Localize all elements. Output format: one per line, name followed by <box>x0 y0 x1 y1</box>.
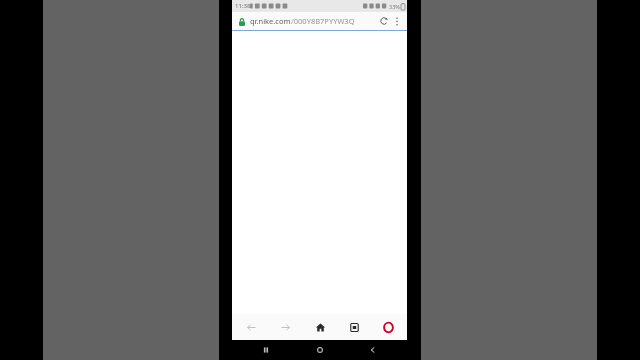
button[interactable]: Tabs <box>339 314 369 340</box>
button[interactable]: qr.nike.com <box>250 16 377 26</box>
staticText: qr.nike.com <box>250 16 291 26</box>
button[interactable]: Home <box>305 314 335 340</box>
staticText: 33% <box>389 3 400 10</box>
button[interactable]: Site security info <box>236 16 247 27</box>
staticText: /000Y8B7PYYW3Q <box>291 16 355 26</box>
button[interactable]: Recent apps <box>246 340 286 360</box>
staticText: 11:38 <box>235 2 251 10</box>
button[interactable]: Forward <box>270 314 300 340</box>
button[interactable]: More options <box>391 13 403 29</box>
button[interactable]: Opera menu <box>373 314 403 340</box>
button[interactable]: Back <box>236 314 266 340</box>
button[interactable]: Reload page <box>377 14 391 28</box>
button[interactable]: Home <box>300 340 340 360</box>
button[interactable]: Back <box>353 340 393 360</box>
